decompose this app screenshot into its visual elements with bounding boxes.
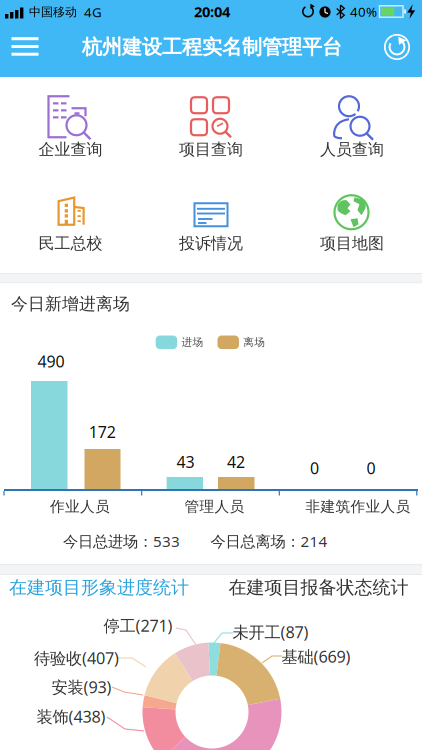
button[interactable]: 项目地图 — [287, 182, 417, 272]
staticText: 今日总进场：533 — [63, 531, 180, 551]
staticText: 490 — [37, 351, 64, 372]
staticText: 安装(93) — [51, 676, 111, 698]
staticText: 离场 — [243, 336, 265, 349]
staticText: 基础(669) — [281, 645, 350, 668]
button[interactable]: 项目查询 — [146, 88, 276, 178]
button[interactable]: Menu — [3, 24, 47, 68]
button[interactable]: 离场 — [216, 332, 266, 352]
staticText: 42 — [227, 451, 245, 472]
staticText: 项目地图 — [320, 234, 384, 253]
staticText: 装饰(438) — [36, 705, 105, 728]
staticText: 在建项目报备状态统计 — [228, 576, 408, 599]
staticText: 40% — [350, 3, 377, 20]
staticText: 非建筑作业人员 — [305, 497, 410, 515]
staticText: 今日新增进离场 — [11, 293, 130, 315]
staticText: 0 — [310, 457, 319, 479]
button[interactable]: 人员查询 — [287, 88, 417, 178]
staticText: 0 — [366, 457, 375, 479]
staticText: 43 — [177, 451, 195, 472]
button[interactable]: 投诉情况 — [146, 182, 276, 272]
button[interactable]: 在建项目报备状态统计 — [215, 570, 422, 604]
staticText: 管理人员 — [184, 497, 244, 515]
staticText: 在建项目形象进度统计 — [9, 576, 189, 599]
staticText: 未开工(87) — [232, 621, 308, 643]
staticText: 中国移动 — [29, 5, 77, 19]
staticText: 172 — [89, 421, 116, 442]
staticText: 停工(271) — [103, 614, 172, 637]
staticText: 待验收(407) — [34, 647, 119, 669]
staticText: 4G — [84, 3, 102, 21]
button[interactable]: 在建项目形象进度统计 — [0, 570, 198, 604]
staticText: 20:04 — [194, 2, 230, 21]
button[interactable]: 企业查询 — [5, 88, 135, 178]
staticText: 进场 — [181, 336, 203, 349]
button[interactable]: 进场 — [155, 332, 205, 352]
staticText: 投诉情况 — [179, 234, 243, 253]
button[interactable]: 民工总校 — [5, 182, 135, 272]
button[interactable]: Refresh — [375, 25, 419, 69]
staticText: 今日总离场：214 — [210, 531, 327, 551]
staticText: 作业人员 — [50, 497, 110, 515]
staticText: 人员查询 — [320, 140, 384, 159]
staticText: 杭州建设工程实名制管理平台 — [82, 35, 342, 59]
staticText: 企业查询 — [38, 140, 102, 159]
staticText: 民工总校 — [38, 234, 102, 253]
staticText: 项目查询 — [179, 140, 243, 159]
